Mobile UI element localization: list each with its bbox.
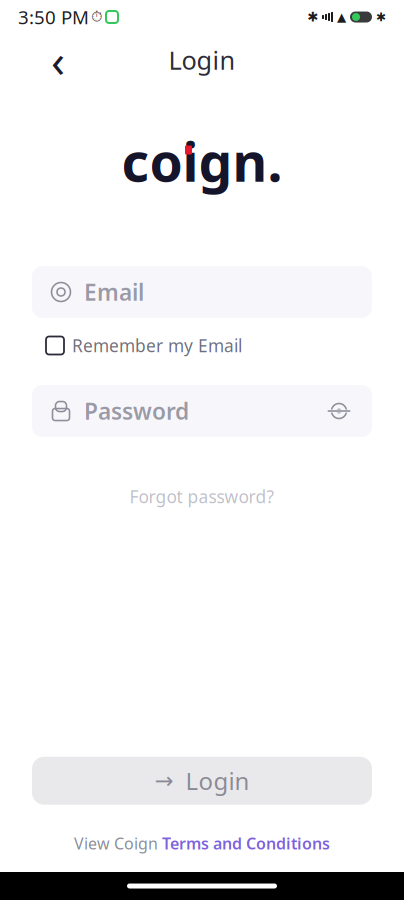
staticText: Password (84, 396, 189, 426)
button[interactable]: Remember my Email (46, 330, 242, 361)
staticText: Login (185, 765, 249, 797)
staticText: coign (121, 126, 267, 196)
staticText: Forgot password? (129, 485, 274, 508)
button[interactable]: Back (34, 36, 82, 84)
staticText: Remember my Email (72, 334, 242, 357)
staticText: ▲ (337, 10, 346, 24)
staticText: ⏱ (91, 10, 102, 24)
staticText: . (267, 126, 282, 196)
staticText: Login (168, 43, 235, 77)
staticText: ✱ (376, 10, 386, 24)
button[interactable]: Forgot password? (119, 479, 284, 514)
staticText: Terms and Conditions (162, 833, 330, 854)
staticText: 3:50 PM (18, 5, 89, 29)
button[interactable]: Email (32, 266, 372, 318)
staticText: View Coign (74, 833, 158, 854)
staticText: ‹ (51, 30, 65, 90)
button[interactable]: View Coign (74, 829, 330, 858)
staticText: → (154, 768, 173, 794)
staticText: ✱ (307, 9, 318, 24)
button[interactable]: Show password (324, 396, 354, 426)
staticText: Email (84, 277, 144, 307)
button[interactable]: → (32, 757, 372, 805)
